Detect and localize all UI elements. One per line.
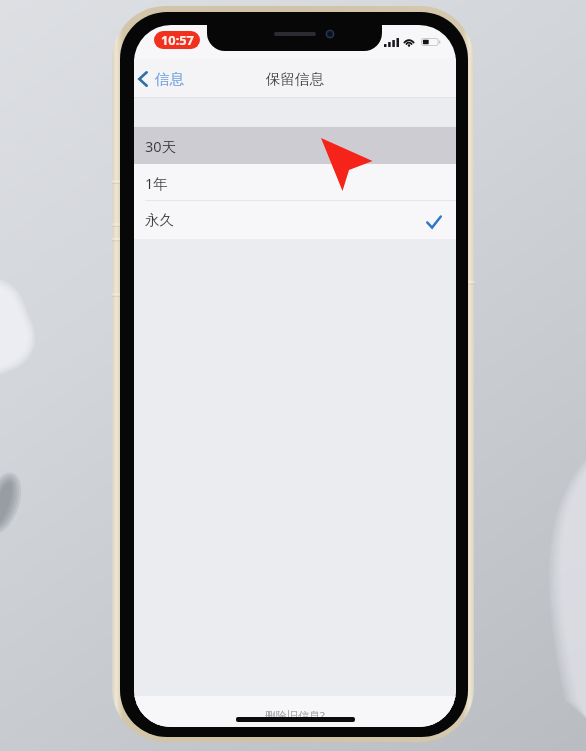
staticText: 信息 [155,70,184,88]
other: Selected [426,215,442,229]
button[interactable]: 永久 [134,201,456,239]
staticText: 1年 [145,173,168,193]
staticText: 30天 [145,136,177,156]
button[interactable]: 30天 [134,127,456,164]
other: Back [138,71,148,87]
button[interactable]: 1年 [134,164,456,201]
staticText: 10:57 [161,31,194,48]
staticText: 删除旧信息? [265,708,325,723]
staticText: 永久 [145,211,174,229]
staticText: 保留信息 [266,70,324,88]
button[interactable]: Back [134,66,192,92]
